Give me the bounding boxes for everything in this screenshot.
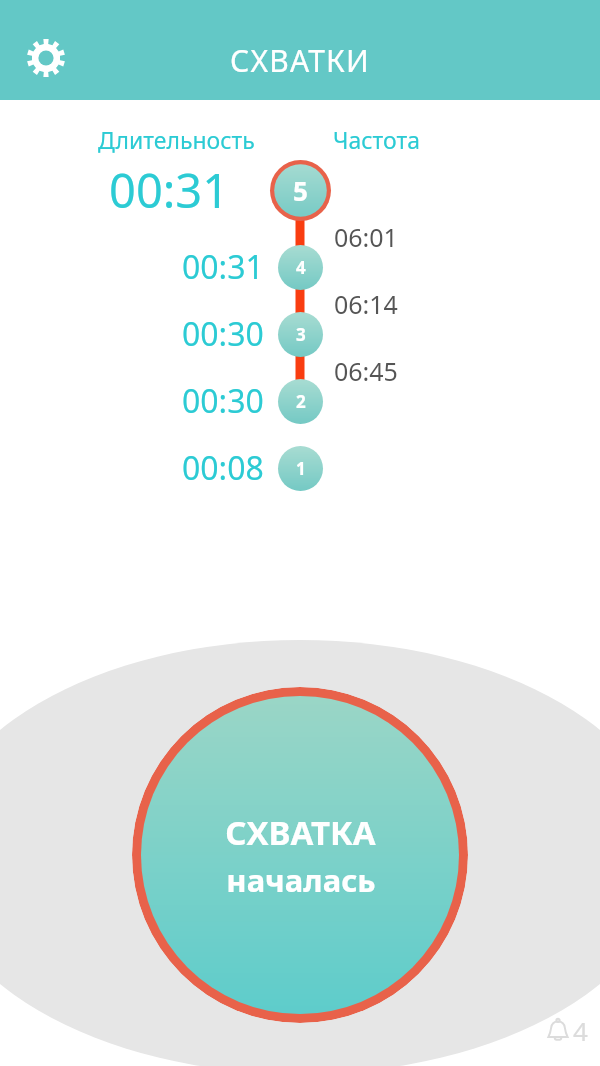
button[interactable]: 00:31 <box>60 158 360 224</box>
button[interactable]: 00:30 <box>90 375 280 427</box>
staticText: Частота <box>333 124 420 155</box>
staticText: 06:14 <box>334 287 398 321</box>
button[interactable]: Settings <box>18 30 74 86</box>
staticText: 1 <box>296 457 306 480</box>
staticText: 00:31 <box>182 245 264 289</box>
button[interactable]: 3 <box>278 312 323 357</box>
staticText: 00:08 <box>182 446 264 490</box>
button[interactable]: 00:08 <box>90 442 280 494</box>
staticText: 3 <box>296 323 306 346</box>
button[interactable]: 4 <box>278 245 323 290</box>
button[interactable]: 5 <box>270 160 331 221</box>
staticText: 00:30 <box>182 379 264 423</box>
button[interactable]: Notifications <box>543 1013 588 1048</box>
staticText: 06:45 <box>334 354 398 388</box>
staticText: 2 <box>296 390 306 413</box>
staticText: Длительность <box>98 124 255 155</box>
button[interactable]: 2 <box>278 379 323 424</box>
staticText: 06:01 <box>334 220 398 254</box>
staticText: 4 <box>296 256 306 279</box>
staticText: СХВАТКА <box>225 810 376 855</box>
button[interactable]: 00:31 <box>90 241 280 293</box>
staticText: 00:31 <box>109 158 230 222</box>
staticText: 00:30 <box>182 312 264 356</box>
button[interactable]: 00:30 <box>90 308 280 360</box>
staticText: началась <box>226 859 376 901</box>
staticText: 5 <box>293 173 308 208</box>
staticText: СХВАТКИ <box>230 40 370 81</box>
button[interactable]: 1 <box>278 446 323 491</box>
staticText: 4 <box>573 1013 588 1048</box>
button[interactable]: СХВАТКА <box>132 687 468 1023</box>
